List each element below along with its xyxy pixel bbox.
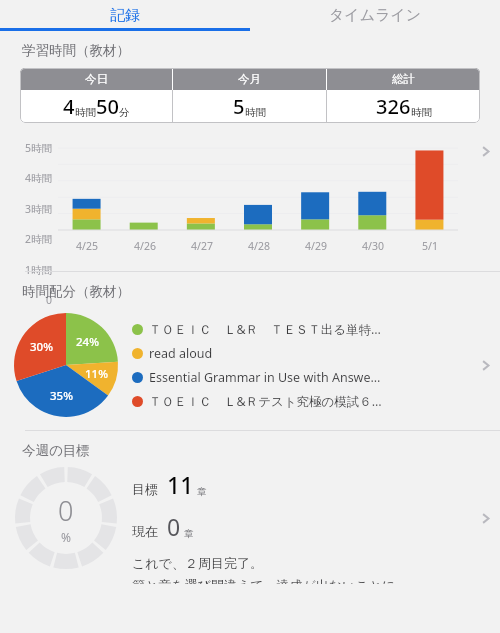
staticText: ＴＯＥＩＣ Ｌ&Ｒ ＴＥＳＴ出る単特… [149, 321, 468, 338]
staticText: 4 [63, 93, 75, 120]
staticText: 326 [376, 93, 411, 120]
staticText: 4/27 [191, 239, 213, 253]
staticText: 0 [58, 492, 74, 529]
staticText: 章 [197, 486, 207, 498]
staticText: 5 [233, 93, 245, 120]
staticText: これで、２周目完了。 [132, 555, 263, 571]
staticText: 0 [0, 293, 52, 307]
staticText: 時間 [75, 106, 96, 119]
staticText: 分 [119, 106, 130, 119]
staticText: 章 [184, 528, 194, 540]
staticText: 50 [96, 93, 119, 120]
staticText: 節と章を選び間違えて、達成が出ないことに… [132, 576, 406, 584]
staticText: 24% [76, 334, 99, 350]
button[interactable]: 学習時間の詳細 [470, 136, 500, 264]
button[interactable]: 時間配分の詳細 [470, 300, 500, 430]
staticText: 30% [30, 339, 53, 355]
staticText: タイムライン [329, 6, 422, 25]
staticText: Essential Grammar in Use with Answe… [149, 369, 468, 386]
button[interactable]: 24% [0, 300, 500, 430]
staticText: 目標 [132, 481, 158, 497]
staticText: % [61, 529, 71, 545]
button[interactable]: 記録 [0, 0, 250, 31]
staticText: 5時間 [0, 141, 52, 155]
staticText: 学習時間（教材） [22, 42, 130, 59]
staticText: 3時間 [0, 202, 52, 216]
staticText: 時間配分（教材） [22, 283, 130, 300]
button[interactable]: タイムライン [250, 0, 500, 31]
staticText: 総計 [392, 72, 415, 86]
staticText: 4/25 [76, 239, 98, 253]
staticText: 4/30 [362, 239, 384, 253]
button[interactable]: 0 [0, 459, 500, 584]
staticText: 今日 [85, 72, 108, 86]
staticText: 4/29 [305, 239, 327, 253]
staticText: 記録 [110, 6, 140, 25]
staticText: 5/1 [422, 239, 438, 253]
staticText: 1時間 [0, 263, 52, 277]
staticText: 0 [167, 511, 181, 542]
staticText: 時間 [411, 106, 432, 119]
staticText: 時間 [245, 106, 266, 119]
staticText: 今月 [238, 72, 261, 86]
staticText: 4時間 [0, 171, 52, 185]
staticText: 11% [85, 366, 108, 382]
staticText: ＴＯＥＩＣ Ｌ&Ｒテスト究極の模試６… [149, 393, 468, 410]
button[interactable]: 今週の目標の詳細 [470, 459, 500, 577]
staticText: 現在 [132, 523, 158, 539]
button[interactable]: 5時間 [0, 136, 500, 264]
staticText: 4/26 [134, 239, 156, 253]
staticText: read aloud [149, 345, 468, 362]
staticText: 35% [50, 388, 73, 404]
staticText: 11 [167, 469, 194, 500]
staticText: 4/28 [248, 239, 270, 253]
staticText: 今週の目標 [22, 442, 90, 459]
staticText: 2時間 [0, 232, 52, 246]
